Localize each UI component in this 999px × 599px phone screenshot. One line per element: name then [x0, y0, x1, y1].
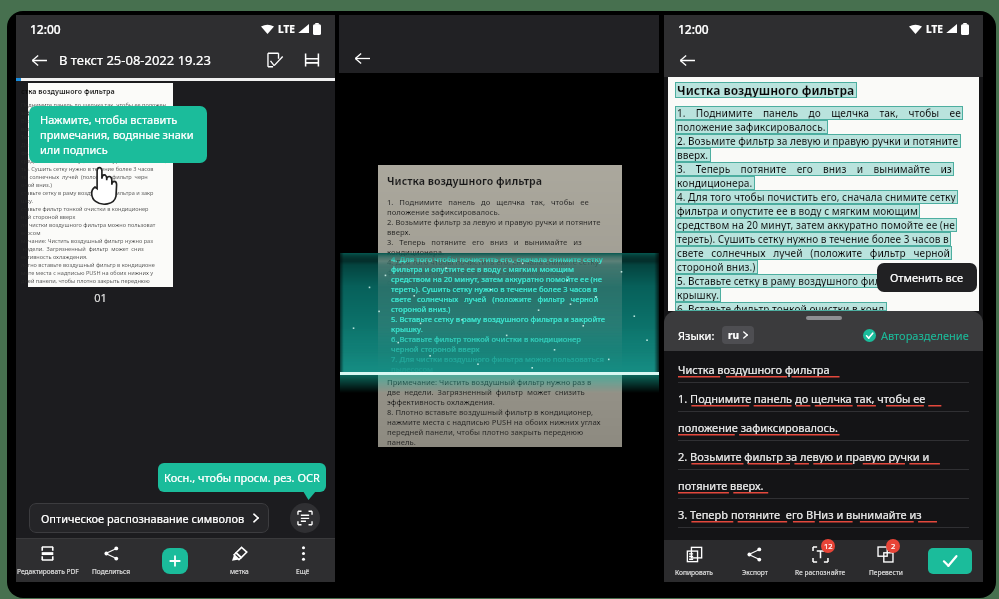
staticText: 7. Для чистки воздушного фильтра можно п… [387, 357, 600, 367]
staticText: Копировать [675, 568, 713, 577]
staticText: 4. Для того чтобы почистить его, сначала… [391, 254, 603, 264]
staticText: мечание: Чистить воздушный фильтр нужно … [21, 237, 153, 245]
button[interactable]: Косн., чтобы просм. рез. OCR [158, 463, 326, 492]
staticText: средством на 20 минут, затем аккуратно п… [677, 218, 955, 232]
staticText: ной стороной вверх [21, 213, 76, 221]
button[interactable]: Back [674, 47, 700, 73]
staticText: Ещё [296, 567, 310, 576]
staticText: 5. Вставьте сетку в раму воздушного филь… [387, 317, 602, 327]
staticText: 12 [824, 541, 833, 551]
staticText: дней панели, чтобы плотно закрыть передн… [21, 277, 150, 285]
button[interactable]: 2 [855, 540, 916, 582]
staticText: 12:00 [30, 21, 61, 37]
staticText: ль. [21, 285, 29, 287]
staticText: крышку. [391, 324, 423, 334]
button[interactable]: Page layout [299, 47, 325, 73]
staticText: свете солнечных лучей (положите фильтр ч… [391, 294, 599, 304]
staticText: панель. [387, 437, 416, 447]
staticText: Поделиться [92, 567, 130, 576]
staticText: вверх. [387, 227, 411, 237]
staticText: Чистка воздушного фильтра [678, 362, 830, 377]
staticText: недели. Загрязненный фильтр может сниз [21, 245, 144, 253]
staticText: метка [230, 567, 249, 576]
staticText: стороной вниз.) [677, 260, 756, 274]
button[interactable]: Экспорт [724, 540, 785, 582]
button[interactable]: Копировать [664, 540, 724, 582]
staticText: 2. Возьмите фильтр за левую и правую руч… [678, 449, 930, 464]
button[interactable]: 12 [785, 540, 855, 582]
staticText: средством на 20 минут, затем аккуратно п… [21, 157, 166, 165]
staticText: пылесосом [391, 364, 434, 373]
staticText: потяните вверх. [678, 478, 764, 493]
staticText: 2. Возьмите фильтр за левую и правую руч… [387, 217, 601, 227]
staticText: ru [728, 328, 739, 342]
staticText: ля чистки воздушного фильтра можно польз… [21, 221, 156, 229]
staticText: 2 [891, 541, 896, 551]
button[interactable]: Авторазделение [863, 328, 969, 343]
button[interactable]: Нажмите, чтобы вставить примечания, водя… [29, 106, 207, 163]
staticText: кондиционера. [677, 176, 753, 190]
button[interactable]: OCR result [290, 503, 320, 533]
staticText: свете солнечных лучей (положите фильтр ч… [677, 246, 950, 260]
button[interactable]: стка воздушного фильтра [28, 83, 173, 287]
staticText: кондиционера. [387, 247, 445, 257]
button[interactable]: Back [349, 45, 375, 71]
staticText: фильтра и опустите ее в воду с мягким мо… [391, 264, 574, 274]
staticText: 1. Поднимите панель до щелчка так, чтобы… [387, 197, 589, 207]
staticText: Re распознайте [795, 568, 846, 577]
staticText: 2. Возьмите фильтр за левую и правую руч… [677, 134, 959, 148]
staticText: 6. Вставьте фильтр тонкой очистки в конд… [391, 334, 581, 344]
button[interactable]: ru [722, 326, 754, 344]
staticText: тереть). Сушить сетку нужно в течение бо… [391, 284, 598, 294]
staticText: ставьте сетку в раму воздушного фильтра … [21, 189, 154, 197]
staticText: Отменить все [890, 270, 964, 285]
staticText: передней панели, чтобы плотно закрыть пе… [387, 427, 584, 437]
staticText: 1. Поднимите панель до щелчка так, чтобы… [678, 391, 926, 406]
staticText: Теперь потяните его вниз и вынимайте из … [21, 133, 166, 141]
button[interactable]: Отменить все [877, 263, 977, 292]
staticText: положение зафиксировалось. [678, 420, 838, 435]
staticText: 8. Плотно вставьте воздушный фильтр в ко… [387, 407, 594, 417]
staticText: Оптическое распознавание символов [41, 511, 245, 526]
button[interactable]: Редактировать PDF [16, 538, 79, 582]
staticText: Чистка воздушного фильтра [387, 174, 543, 188]
staticText: стка воздушного фильтра [21, 87, 115, 97]
staticText: LTE [926, 22, 943, 36]
staticText: фильтра и опустите ее в воду с мягким мо… [21, 149, 153, 157]
staticText: 3. Теперь потяните его вниз и вынимайте … [387, 237, 582, 247]
button[interactable]: Back [26, 47, 52, 73]
button[interactable]: Ещё [271, 538, 335, 582]
staticText: 5. Вставьте сетку в раму воздушного филь… [391, 314, 606, 324]
staticText: те солнечных лучей (положите фильтр черн [21, 173, 148, 181]
staticText: 4. Для того чтобы почистить его, сначала… [387, 257, 599, 267]
staticText: свете солнечных лучей (положите фильтр ч… [387, 297, 595, 307]
staticText: ть). Сушить сетку нужно в течение более … [21, 165, 154, 173]
staticText: 5. Вставьте сетку в раму воздушного филь… [677, 274, 959, 288]
staticText: пылесосом [387, 367, 430, 377]
staticText: фильтра и опустите ее в воду с мягким мо… [677, 204, 918, 218]
button[interactable]: Select all [262, 47, 288, 73]
staticText: тереть). Сушить сетку нужно в течение бо… [677, 232, 949, 246]
staticText: стороной вниз.) [391, 304, 451, 314]
staticText: фильтра и опустите ее в воду с мягким мо… [387, 267, 570, 277]
staticText: положение зафиксировалось. [387, 207, 500, 217]
staticText: Языки: [678, 328, 715, 343]
button[interactable]: Поделиться [79, 538, 143, 582]
staticText: Косн., чтобы просм. рез. OCR [164, 470, 320, 485]
button[interactable]: метка [207, 538, 271, 582]
staticText: лотно вставьте воздушный фильтр в кондиц… [21, 261, 155, 269]
staticText: стороной вниз.) [387, 307, 447, 317]
staticText: Примечание: Чистить воздушный фильтр нуж… [387, 377, 592, 387]
button[interactable]: Add page [162, 548, 188, 574]
button[interactable]: Done [928, 548, 972, 574]
staticText: крышку. [387, 327, 419, 337]
staticText: средством на 20 минут, затем аккуратно п… [391, 274, 602, 284]
staticText: положение зафиксировалось. [677, 120, 826, 134]
staticText: вверх. [21, 125, 39, 133]
staticText: шку. [21, 197, 34, 205]
staticText: 01 [28, 290, 173, 305]
staticText: 6. Вставьте фильтр тонкой очистки в конд… [387, 337, 577, 347]
staticText: тереть). Сушить сетку нужно в течение бо… [387, 287, 594, 297]
button[interactable]: Оптическое распознавание символов [29, 503, 269, 533]
